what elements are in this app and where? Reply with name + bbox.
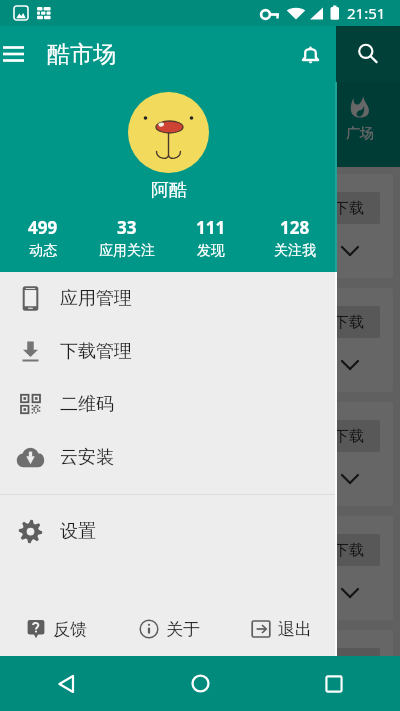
button[interactable]: Search <box>336 26 400 82</box>
staticText: 二维码 <box>60 393 114 416</box>
button[interactable]: 广场 <box>160 82 240 167</box>
button[interactable]: Open navigation drawer <box>0 26 27 82</box>
staticText: 111 <box>196 216 226 239</box>
staticText: 下载 <box>334 655 364 674</box>
button[interactable]: 二维码 <box>0 378 337 431</box>
staticText: 499 <box>28 216 58 239</box>
button[interactable]: 关于 <box>113 607 225 651</box>
staticText: 关于 <box>166 619 200 640</box>
button[interactable]: 广场 <box>320 82 400 167</box>
button[interactable]: 云安装 <box>0 431 337 484</box>
staticText: 下载 <box>334 541 364 560</box>
button[interactable]: 下载管理 <box>0 325 337 378</box>
staticText: 广场 <box>186 125 214 143</box>
staticText: 反馈 <box>53 619 87 640</box>
button[interactable]: 111 <box>169 216 253 260</box>
button[interactable]: Home <box>134 656 267 711</box>
button[interactable]: Recent apps <box>267 656 400 711</box>
staticText: 设置 <box>60 520 96 543</box>
staticText: 广场 <box>106 125 134 143</box>
staticText: 广场 <box>346 125 374 143</box>
staticText: 发现 <box>197 242 225 260</box>
staticText: 应用关注 <box>99 242 155 260</box>
staticText: 动态 <box>29 242 57 260</box>
button[interactable]: Notifications <box>284 26 336 82</box>
staticText: 下载 <box>334 427 364 446</box>
staticText: 33 <box>117 216 137 239</box>
staticText: 阿酷 <box>151 179 187 202</box>
button[interactable]: Back <box>0 656 134 711</box>
button[interactable]: 应用管理 <box>0 272 337 325</box>
staticText: 酷市场 <box>47 40 116 69</box>
button[interactable]: 128 <box>253 216 337 260</box>
staticText: 下载 <box>334 199 364 218</box>
staticText: 21:51 <box>347 3 386 23</box>
staticText: 退出 <box>278 619 312 640</box>
button[interactable]: 499 <box>0 216 85 260</box>
staticText: 关注我 <box>274 242 316 260</box>
button[interactable]: 设置 <box>0 505 337 558</box>
staticText: 下载管理 <box>60 340 132 363</box>
staticText: 下载 <box>334 313 364 332</box>
button[interactable]: 广场 <box>80 82 160 167</box>
button[interactable]: 反馈 <box>0 607 113 651</box>
staticText: 128 <box>280 216 310 239</box>
staticText: 应用管理 <box>60 287 132 310</box>
staticText: 云安装 <box>60 446 114 469</box>
button[interactable]: 退出 <box>225 607 337 651</box>
button[interactable]: 33 <box>85 216 169 260</box>
